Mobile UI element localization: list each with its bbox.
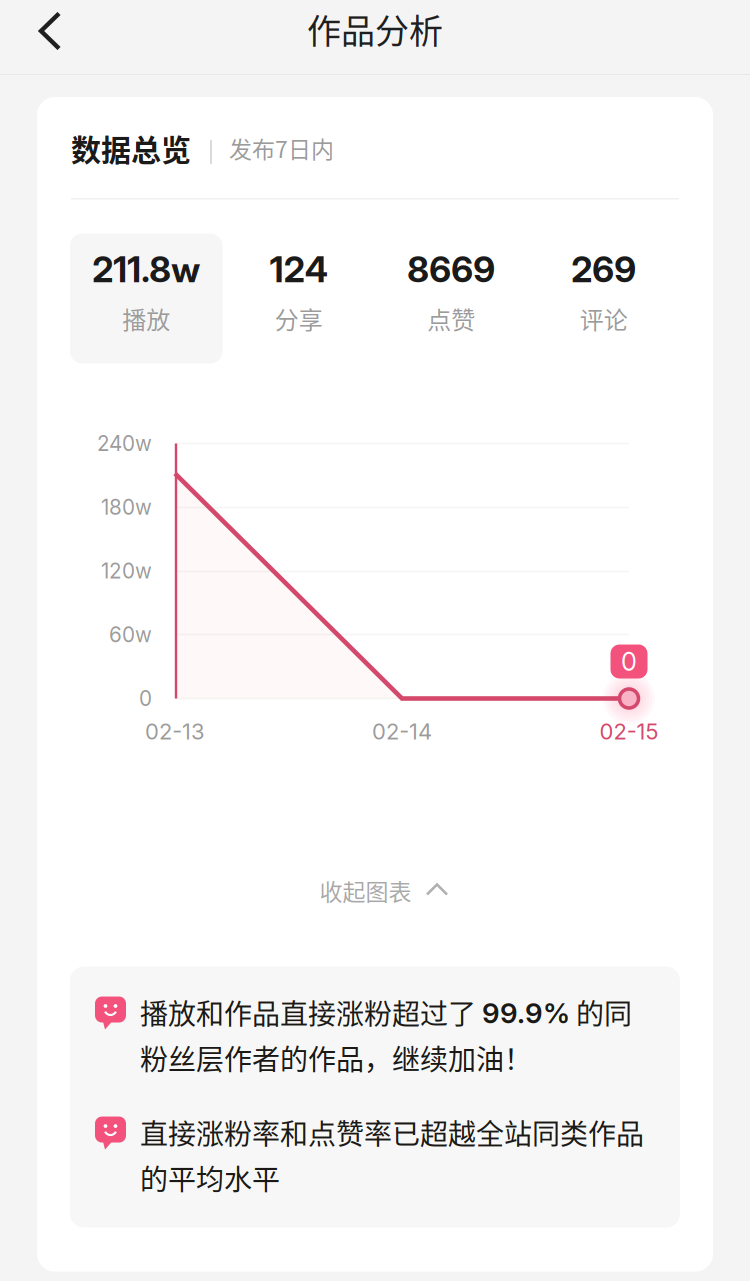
staticText: 02-15: [599, 718, 658, 745]
button[interactable]: 211.8w: [70, 233, 222, 363]
staticText: 8669: [407, 248, 495, 291]
staticText: 播放和作品直接涨粉超过了 99.9% 的同粉丝层作者的作品，继续加油！: [140, 992, 632, 1078]
staticText: 124: [270, 248, 328, 291]
staticText: 播放: [122, 301, 170, 336]
staticText: 点赞: [427, 301, 475, 336]
staticText: 02-13: [145, 718, 205, 745]
staticText: 269: [571, 248, 636, 291]
staticText: 评论: [580, 301, 628, 336]
staticText: 211.8w: [92, 248, 200, 291]
staticText: 分享: [275, 301, 323, 336]
staticText: 120w: [101, 558, 152, 583]
staticText: 0: [621, 646, 637, 677]
button[interactable]: 269: [527, 233, 680, 363]
staticText: 240w: [97, 431, 152, 456]
button[interactable]: 收起图表: [37, 860, 713, 920]
staticText: 0: [139, 686, 152, 711]
staticText: 60w: [109, 622, 152, 647]
staticText: 收起图表: [319, 874, 411, 907]
staticText: 数据总览: [71, 126, 191, 170]
staticText: 直接涨粉率和点赞率已超越全站同类作品的平均水平: [140, 1113, 644, 1198]
staticText: 发布7日内: [229, 131, 334, 165]
staticText: 作品分析: [307, 4, 443, 54]
staticText: 02-14: [372, 718, 432, 745]
button[interactable]: 124: [222, 233, 375, 363]
staticText: 180w: [101, 495, 152, 520]
button[interactable]: Back: [0, 0, 100, 62]
button[interactable]: 8669: [375, 233, 527, 363]
